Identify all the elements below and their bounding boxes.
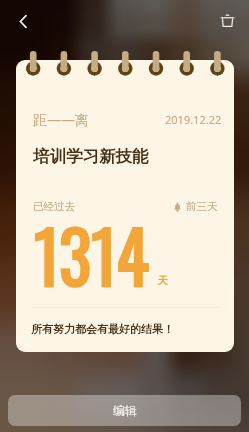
staticText: 2019.12.22 [165, 112, 222, 127]
staticText: 编辑 [113, 403, 137, 418]
staticText: 培训学习新技能 [33, 146, 149, 167]
staticText: 所有努力都会有最好的结果！ [31, 322, 174, 336]
staticText: 距——离 [33, 110, 89, 129]
staticText: 已经过去 [33, 200, 75, 213]
staticText: 天 [158, 274, 168, 287]
button[interactable]: Delete [211, 5, 243, 37]
staticText: 1314 [34, 200, 149, 307]
button[interactable]: Back [7, 5, 39, 37]
staticText: 前三天 [186, 200, 218, 213]
button[interactable]: 编辑 [8, 395, 241, 426]
